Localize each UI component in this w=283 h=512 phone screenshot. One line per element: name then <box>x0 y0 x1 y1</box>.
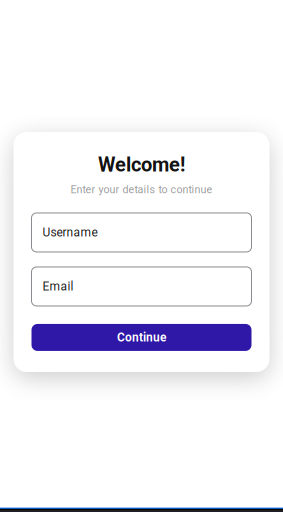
button[interactable]: Continue <box>31 324 251 351</box>
staticText: Continue <box>117 330 166 344</box>
staticText: Email <box>42 279 73 293</box>
staticText: Welcome! <box>98 153 185 176</box>
staticText: Enter your details to continue <box>70 183 212 196</box>
staticText: Username <box>42 225 97 239</box>
